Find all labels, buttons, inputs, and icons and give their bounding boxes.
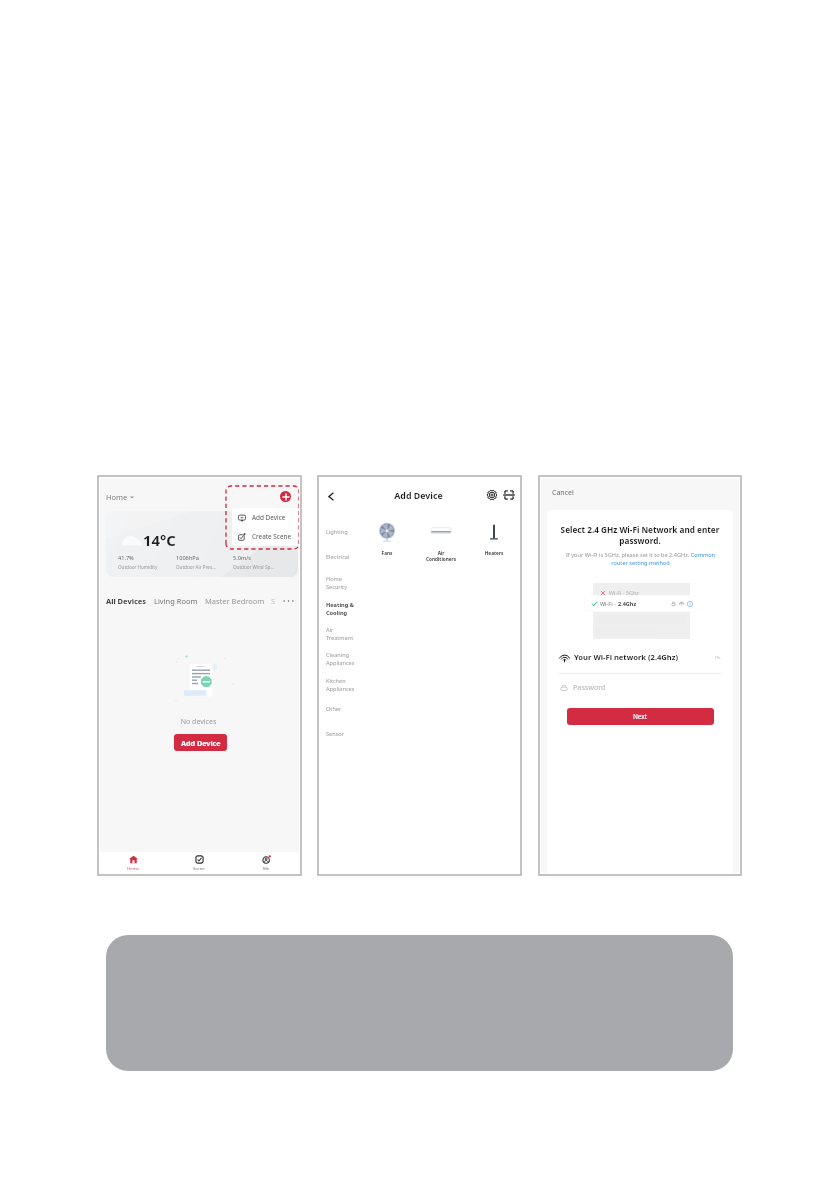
- staticText: Scene: [193, 866, 205, 872]
- button[interactable]: Living Room: [154, 590, 198, 612]
- button[interactable]: Scene: [188, 852, 210, 874]
- button[interactable]: Home Security: [322, 570, 370, 594]
- button[interactable]: Cancel: [546, 484, 580, 502]
- staticText: Wi-Fi -: [600, 600, 618, 607]
- staticText: Home: [106, 492, 128, 502]
- staticText: Password: [573, 682, 606, 692]
- button[interactable]: Fans: [362, 523, 412, 563]
- staticText: Air Conditioners: [416, 550, 466, 562]
- staticText: Next: [633, 712, 648, 721]
- button[interactable]: More rooms: [280, 590, 296, 612]
- staticText: Cleaning Appliances: [326, 651, 355, 666]
- button[interactable]: Scan QR code: [503, 489, 515, 501]
- button[interactable]: Auto scan: [486, 489, 498, 501]
- staticText: Select 2.4 GHz Wi-Fi Network and enter p…: [547, 524, 733, 546]
- staticText: Outdoor Humidity: [118, 564, 158, 570]
- button[interactable]: Other: [322, 697, 370, 721]
- button[interactable]: Next: [567, 708, 714, 725]
- staticText: Air Treatment: [326, 626, 354, 641]
- staticText: 5.0m/s: [233, 554, 251, 562]
- staticText: Cancel: [552, 488, 574, 498]
- staticText: No devices: [98, 717, 299, 727]
- staticText: 41.7%: [118, 554, 134, 562]
- staticText: Outdoor Wind Sp...: [233, 564, 274, 570]
- button[interactable]: Back: [324, 489, 338, 503]
- button[interactable]: Air Conditioners: [416, 523, 466, 563]
- staticText: 1006hPa: [176, 554, 199, 562]
- staticText: Create Scene: [252, 532, 292, 541]
- staticText: Outdoor Air Pres...: [176, 564, 216, 570]
- staticText: Your Wi-Fi network (2.4Ghz): [574, 652, 679, 662]
- button[interactable]: Home: [104, 487, 136, 506]
- button[interactable]: All Devices: [106, 590, 147, 612]
- button[interactable]: Home: [122, 852, 144, 874]
- staticText: Heaters: [469, 550, 519, 556]
- staticText: Master Bedroom: [205, 596, 265, 606]
- button[interactable]: Add device or scene: [280, 491, 291, 502]
- button[interactable]: Me: [255, 852, 277, 874]
- staticText: Other: [326, 705, 342, 713]
- staticText: Ch.: [715, 655, 722, 660]
- button[interactable]: Lighting: [322, 520, 370, 544]
- staticText: Add Device: [318, 490, 519, 502]
- staticText: Heating & Cooling: [326, 601, 354, 616]
- staticText: Wi-Fi - 5Ghz: [609, 589, 639, 596]
- button[interactable]: Master Bedroom: [205, 590, 265, 612]
- staticText: 2.4Ghz: [618, 600, 637, 607]
- staticText: Fans: [362, 550, 412, 556]
- button[interactable]: Wi-Fi -: [585, 596, 699, 611]
- button[interactable]: Create Scene: [232, 527, 299, 546]
- staticText: S: [271, 596, 276, 606]
- button[interactable]: Sensor: [322, 722, 370, 746]
- staticText: Home Security: [326, 575, 347, 590]
- staticText: Electrical: [326, 553, 350, 561]
- staticText: Home: [127, 866, 139, 872]
- button[interactable]: S: [271, 590, 276, 612]
- staticText: Lighting: [326, 528, 348, 536]
- staticText: All Devices: [106, 596, 147, 606]
- button[interactable]: Kitchen Appliances: [322, 672, 370, 696]
- button[interactable]: Air Treatment: [322, 621, 370, 645]
- button[interactable]: Add Device: [174, 734, 227, 751]
- staticText: 14°C: [143, 530, 176, 550]
- staticText: Add Device: [252, 513, 286, 522]
- button[interactable]: Cleaning Appliances: [322, 646, 370, 670]
- staticText: Me: [263, 866, 270, 872]
- button[interactable]: Password: [559, 680, 722, 694]
- button[interactable]: Electrical: [322, 545, 370, 569]
- button[interactable]: Heating & Cooling: [322, 596, 370, 620]
- staticText: Add Device: [181, 738, 221, 748]
- staticText: If your Wi-Fi is 5GHz, please set it to …: [559, 551, 722, 567]
- staticText: Living Room: [154, 596, 198, 606]
- staticText: Sensor: [326, 730, 345, 738]
- button[interactable]: Heaters: [469, 523, 519, 563]
- button[interactable]: Add Device: [232, 508, 299, 527]
- staticText: Kitchen Appliances: [326, 677, 355, 692]
